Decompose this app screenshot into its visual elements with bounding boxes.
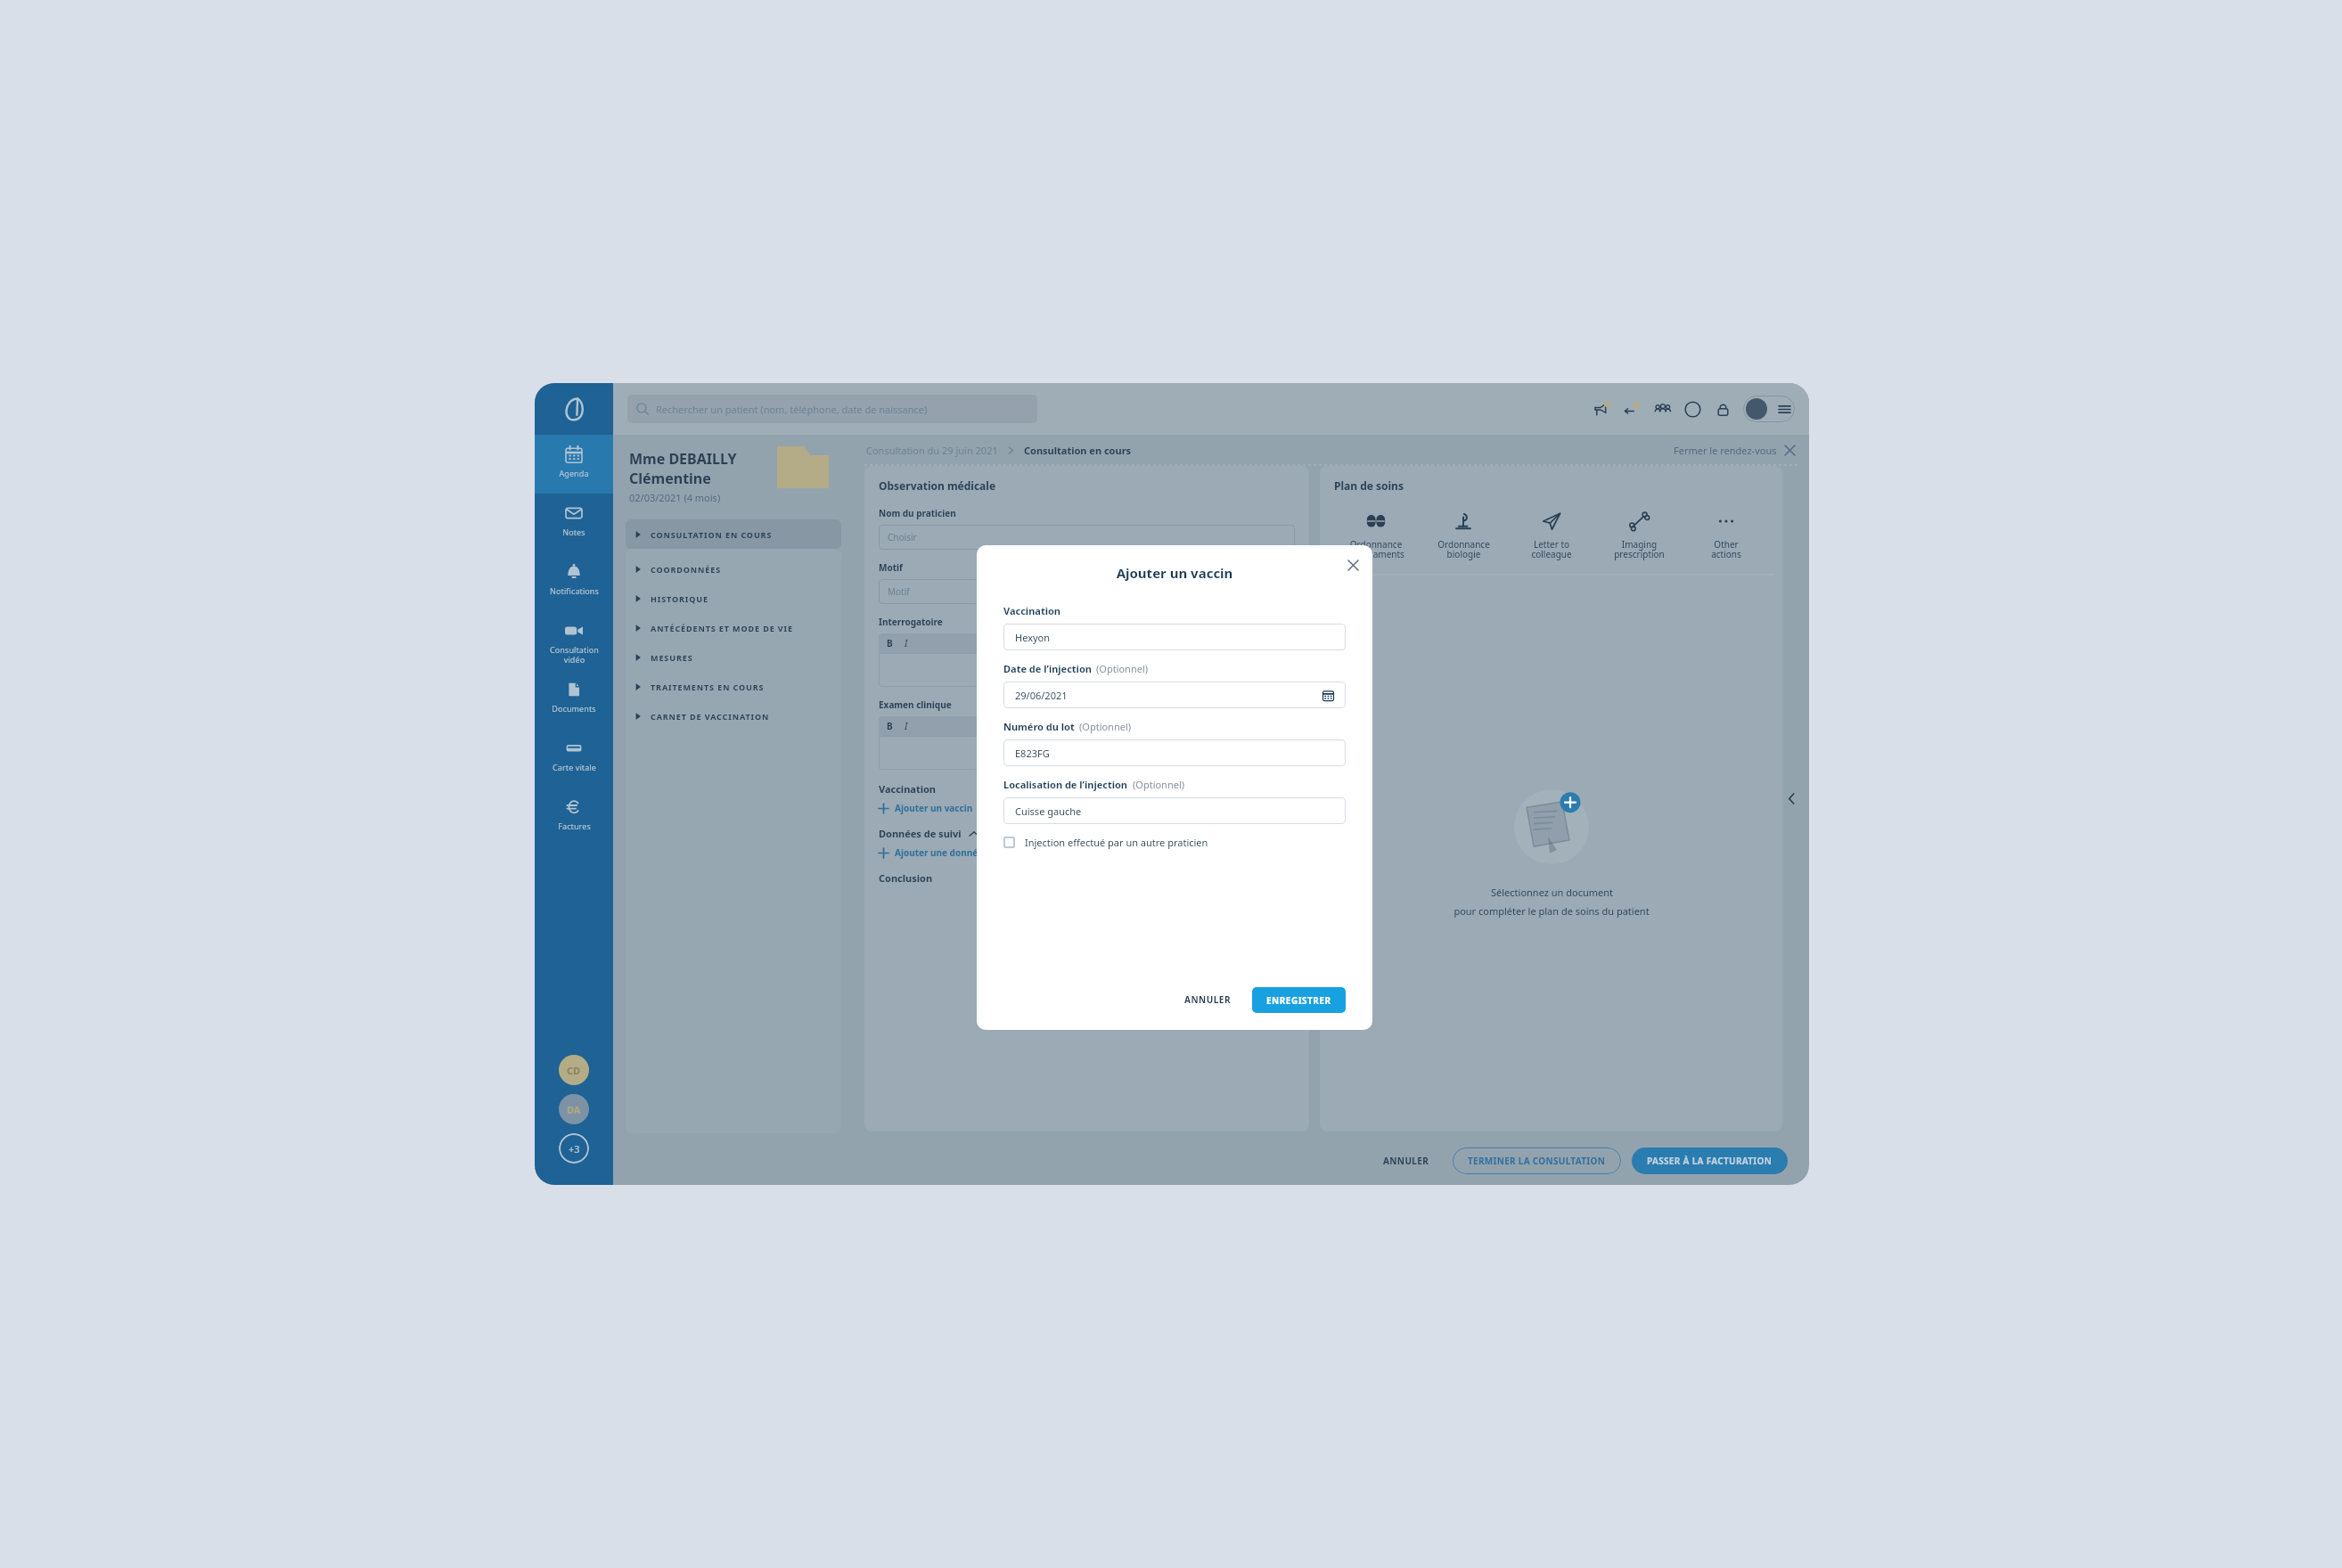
- staticText: +3: [569, 1142, 580, 1156]
- staticText: 29/06/2021: [1015, 689, 1068, 702]
- staticText: Ajouter un vaccin: [895, 802, 973, 814]
- staticText: Motif: [879, 561, 903, 574]
- button[interactable]: I: [905, 720, 908, 732]
- button[interactable]: CONSULTATION EN COURS: [626, 519, 841, 549]
- button[interactable]: Replier le panneau: [1787, 794, 1797, 804]
- staticText: (Optionnel): [1079, 720, 1132, 733]
- staticText: Ajouter une donnée de suivi: [895, 846, 1020, 859]
- button[interactable]: I: [905, 637, 908, 649]
- staticText: Nom du praticien: [879, 507, 956, 519]
- staticText: TERMINER LA CONSULTATION: [1468, 1155, 1606, 1167]
- staticText: TRAITEMENTS EN COURS: [651, 682, 765, 692]
- staticText: CONSULTATION EN COURS: [651, 529, 773, 540]
- button[interactable]: ENREGISTRER: [1252, 987, 1346, 1013]
- staticText: Motif: [888, 585, 910, 598]
- button[interactable]: Messages: [1617, 394, 1647, 424]
- staticText: Fermer le rendez-vous: [1674, 444, 1777, 457]
- staticText: (Optionnel): [1096, 662, 1149, 675]
- button[interactable]: Annonces: [1586, 394, 1617, 424]
- staticText: Données de suivi: [879, 827, 962, 840]
- button[interactable]: E823FG: [1003, 739, 1346, 766]
- staticText: Letter to colleague: [1531, 538, 1572, 560]
- staticText: Localisation de l’injection: [1003, 778, 1128, 791]
- button[interactable]: Ordonnance biologie: [1425, 505, 1502, 566]
- button[interactable]: Notes: [535, 494, 613, 552]
- button[interactable]: COORDONNÉES: [626, 554, 841, 584]
- button[interactable]: Motif: [879, 579, 1295, 604]
- button[interactable]: Notifications: [535, 552, 613, 611]
- button[interactable]: Choisir une date: [1322, 690, 1334, 701]
- button[interactable]: Replier: [970, 829, 979, 838]
- button[interactable]: 29/06/2021: [1003, 682, 1346, 708]
- button[interactable]: Documents: [535, 670, 613, 729]
- staticText: DA: [567, 1103, 581, 1116]
- button[interactable]: Équipe: [1647, 394, 1677, 424]
- button[interactable]: MESURES: [626, 642, 841, 672]
- button[interactable]: Plus d'utilisateurs: [559, 1133, 589, 1164]
- staticText: HISTORIQUE: [651, 593, 708, 604]
- button[interactable]: Ordonnance médicaments: [1338, 505, 1414, 566]
- staticText: MESURES: [651, 652, 693, 663]
- button[interactable]: Ajouter un vaccin: [879, 802, 973, 814]
- staticText: Ajouter un vaccin: [1003, 564, 1346, 582]
- button[interactable]: Fermer: [1342, 554, 1363, 576]
- button[interactable]: Choisir: [879, 525, 1295, 550]
- button[interactable]: ANNULER: [1371, 1147, 1442, 1174]
- staticText: PASSER À LA FACTURATION: [1647, 1155, 1773, 1167]
- staticText: Documents: [552, 703, 596, 714]
- staticText: Injection effectué par un autre praticie…: [1025, 836, 1208, 849]
- button[interactable]: Consultation du 29 juin 2021: [866, 444, 998, 457]
- button[interactable]: Factures: [535, 788, 613, 846]
- staticText: Vaccination: [1003, 604, 1060, 617]
- staticText: Rechercher un patient (nom, téléphone, d…: [656, 403, 928, 416]
- button[interactable]: Injection effectué par un autre praticie…: [1003, 836, 1346, 849]
- button[interactable]: TERMINER LA CONSULTATION: [1453, 1147, 1621, 1174]
- button[interactable]: Utilisateur DA: [559, 1094, 589, 1124]
- button[interactable]: ANTÉCÉDENTS ET MODE DE VIE: [626, 613, 841, 642]
- staticText: ENREGISTRER: [1266, 994, 1331, 1007]
- button[interactable]: [535, 383, 613, 435]
- staticText: pour compléter le plan de soins du patie…: [1454, 904, 1650, 918]
- staticText: ANNULER: [1383, 1155, 1429, 1167]
- button[interactable]: ANNULER: [1175, 986, 1240, 1013]
- button[interactable]: Imaging prescription: [1601, 505, 1677, 566]
- button[interactable]: Verrouiller: [1707, 394, 1738, 424]
- button[interactable]: Consultation vidéo: [535, 611, 613, 670]
- button[interactable]: B: [887, 637, 893, 649]
- staticText: Conclusion: [879, 871, 933, 885]
- button[interactable]: Hexyon: [1003, 624, 1346, 650]
- button[interactable]: [879, 653, 1295, 687]
- button[interactable]: Carte vitale: [535, 729, 613, 788]
- staticText: Ordonnance médicaments: [1347, 538, 1404, 560]
- staticText: Observation médicale: [879, 478, 996, 493]
- button[interactable]: TRAITEMENTS EN COURS: [626, 672, 841, 701]
- button[interactable]: B: [887, 720, 893, 732]
- staticText: (Optionnel): [1133, 778, 1185, 791]
- staticText: Ordonnance biologie: [1437, 538, 1490, 560]
- staticText: Consultation vidéo: [550, 644, 599, 665]
- button[interactable]: HISTORIQUE: [626, 584, 841, 613]
- button[interactable]: Ajouter une donnée de suivi: [879, 846, 1020, 859]
- staticText: CD: [567, 1064, 581, 1077]
- staticText: Notifications: [550, 585, 599, 596]
- staticText: ANTÉCÉDENTS ET MODE DE VIE: [651, 623, 793, 633]
- staticText: ANNULER: [1184, 993, 1231, 1006]
- button[interactable]: Rechercher un patient (nom, téléphone, d…: [627, 395, 1037, 423]
- button[interactable]: Letter to colleague: [1513, 505, 1590, 566]
- button[interactable]: Agenda: [535, 435, 613, 494]
- button[interactable]: PASSER À LA FACTURATION: [1632, 1147, 1788, 1174]
- staticText: Cuisse gauche: [1015, 804, 1082, 818]
- button[interactable]: Cuisse gauche: [1003, 797, 1346, 824]
- button[interactable]: [879, 736, 1295, 770]
- button[interactable]: Aide: [1677, 394, 1707, 424]
- staticText: Sélectionnez un document: [1491, 886, 1613, 899]
- button[interactable]: Utilisateur CD: [559, 1055, 589, 1085]
- staticText: Plan de soins: [1334, 478, 1404, 493]
- button[interactable]: Menu du compte: [1743, 396, 1795, 422]
- button[interactable]: Other actions: [1688, 505, 1765, 566]
- button[interactable]: CARNET DE VACCINATION: [626, 701, 841, 731]
- staticText: Choisir: [888, 531, 917, 543]
- button[interactable]: Fermer le rendez-vous: [1674, 444, 1795, 457]
- staticText: Clémentine: [629, 469, 711, 488]
